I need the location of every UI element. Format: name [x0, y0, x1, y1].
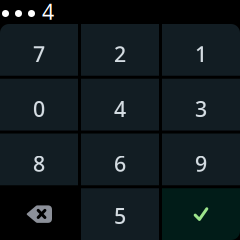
staticText: 7	[33, 40, 45, 68]
button[interactable]: 1	[162, 24, 240, 76]
button[interactable]: 5	[81, 188, 159, 240]
staticText: 1	[195, 40, 207, 68]
staticText: 9	[195, 149, 207, 177]
button[interactable]: 7	[0, 24, 78, 76]
button[interactable]: 2	[81, 24, 159, 76]
button[interactable]: Confirm	[162, 188, 240, 240]
staticText: 4	[114, 94, 126, 123]
button[interactable]: 6	[81, 133, 159, 185]
staticText: 8	[33, 149, 45, 177]
button[interactable]: Delete	[0, 188, 78, 240]
staticText: 3	[195, 94, 207, 123]
staticText: 4	[42, 0, 54, 26]
button[interactable]: 8	[0, 133, 78, 185]
button[interactable]: 3	[162, 79, 240, 131]
button[interactable]: 0	[0, 79, 78, 131]
staticText: 0	[33, 94, 45, 123]
staticText: 2	[114, 40, 126, 68]
staticText: 6	[114, 149, 126, 177]
staticText: 5	[114, 201, 126, 230]
button[interactable]: 4	[81, 79, 159, 131]
button[interactable]: 9	[162, 133, 240, 185]
